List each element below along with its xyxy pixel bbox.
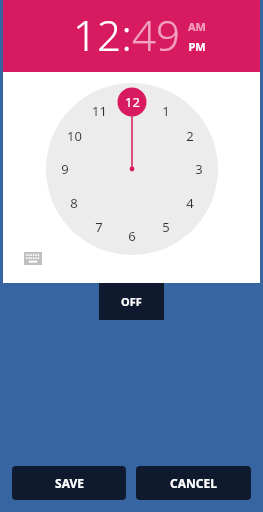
- button[interactable]: 49: [132, 6, 180, 63]
- staticText: 10: [67, 127, 82, 145]
- staticText: :: [121, 6, 132, 63]
- button[interactable]: 12: [73, 6, 121, 63]
- staticText: PM: [188, 39, 206, 54]
- staticText: 1: [162, 102, 170, 120]
- button[interactable]: 8: [60, 189, 88, 217]
- button[interactable]: Switch to keyboard input: [20, 245, 46, 271]
- button[interactable]: 9: [51, 155, 79, 183]
- button[interactable]: 11: [85, 97, 113, 125]
- button[interactable]: OFF: [99, 283, 164, 320]
- staticText: 12: [73, 6, 121, 63]
- staticText: 5: [162, 218, 170, 236]
- staticText: 12: [125, 93, 140, 111]
- staticText: 11: [92, 102, 107, 120]
- staticText: CANCEL: [170, 475, 217, 491]
- button[interactable]: 1: [152, 97, 180, 125]
- button[interactable]: 2: [176, 122, 204, 150]
- button[interactable]: SAVE: [12, 466, 126, 500]
- button[interactable]: PM: [188, 39, 206, 54]
- staticText: 49: [132, 6, 180, 63]
- staticText: 4: [186, 194, 194, 212]
- button[interactable]: 12: [118, 88, 146, 116]
- staticText: AM: [188, 19, 206, 34]
- staticText: 3: [195, 160, 203, 178]
- button[interactable]: AM: [188, 19, 206, 34]
- staticText: OFF: [121, 294, 142, 309]
- button[interactable]: 3: [185, 155, 213, 183]
- button[interactable]: CANCEL: [136, 466, 251, 500]
- button[interactable]: 10: [60, 122, 88, 150]
- staticText: 9: [61, 160, 69, 178]
- button[interactable]: 4: [176, 189, 204, 217]
- staticText: 6: [128, 227, 136, 245]
- staticText: SAVE: [55, 475, 84, 491]
- button[interactable]: 6: [118, 222, 146, 250]
- staticText: 7: [95, 218, 103, 236]
- button[interactable]: 7: [85, 213, 113, 241]
- staticText: 2: [186, 127, 194, 145]
- button[interactable]: 5: [152, 213, 180, 241]
- staticText: 8: [70, 194, 78, 212]
